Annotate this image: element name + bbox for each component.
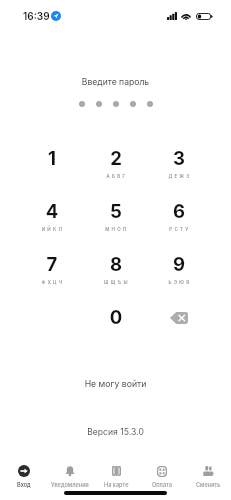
staticText: На карте: [104, 482, 129, 489]
button[interactable]: 7: [26, 250, 78, 290]
staticText: Ш Щ Ъ Ы: [90, 280, 142, 285]
button[interactable]: 5: [90, 197, 142, 237]
staticText: Р С Т У: [153, 227, 205, 232]
staticText: 1: [26, 147, 78, 169]
staticText: 0: [90, 306, 142, 328]
button[interactable]: Сменить: [185, 462, 231, 500]
button[interactable]: 8: [90, 250, 142, 290]
button[interactable]: 0: [90, 303, 142, 343]
staticText: Д Е Ж З: [153, 174, 205, 179]
staticText: Введите пароль: [0, 77, 231, 87]
staticText: Ь Э Ю Я: [153, 280, 205, 285]
staticText: 9: [153, 253, 205, 275]
staticText: 7: [26, 253, 78, 275]
staticText: Версия 15.3.0: [0, 427, 231, 437]
button[interactable]: 6: [153, 197, 205, 237]
button[interactable]: 3: [153, 144, 205, 184]
staticText: 6: [153, 200, 205, 222]
staticText: Сменить: [196, 482, 221, 489]
button[interactable]: 9: [153, 250, 205, 290]
button[interactable]: Уведомления: [47, 462, 93, 500]
staticText: 8: [90, 253, 142, 275]
staticText: 16:39: [23, 10, 50, 22]
staticText: М Н О П: [90, 227, 142, 232]
staticText: Оплата: [152, 482, 172, 489]
staticText: 4: [26, 200, 78, 222]
button[interactable]: Стереть: [157, 304, 201, 331]
button[interactable]: Не могу войти: [0, 379, 231, 390]
staticText: 5: [90, 200, 142, 222]
button[interactable]: Оплата: [139, 462, 185, 500]
staticText: И Й К Л: [26, 227, 78, 232]
staticText: Вход: [17, 482, 31, 489]
button[interactable]: 4: [26, 197, 78, 237]
staticText: Уведомления: [51, 482, 89, 489]
button[interactable]: 1: [26, 144, 78, 184]
button[interactable]: 2: [90, 144, 142, 184]
staticText: 3: [153, 147, 205, 169]
staticText: 2: [90, 147, 142, 169]
button[interactable]: На карте: [93, 462, 139, 500]
staticText: А Б В Г: [90, 174, 142, 179]
button[interactable]: Вход: [0, 462, 47, 500]
staticText: Ф Х Ц Ч: [26, 280, 78, 285]
